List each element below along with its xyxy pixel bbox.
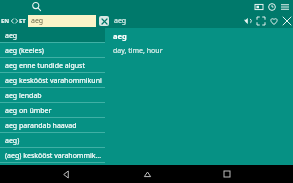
staticText: (aeg) keskööst varahommikuni bbox=[5, 151, 103, 161]
staticText: aeg) bbox=[5, 136, 20, 146]
button[interactable]: Search bbox=[28, 0, 44, 13]
staticText: aeg bbox=[114, 16, 127, 26]
staticText: EN bbox=[1, 17, 10, 25]
button[interactable]: Close bbox=[280, 14, 293, 27]
button[interactable]: Favourite bbox=[267, 14, 280, 27]
button[interactable]: aeg keskööst varahommikuni bbox=[0, 73, 105, 88]
button[interactable]: Fullscreen bbox=[254, 14, 267, 27]
button[interactable]: Recents bbox=[212, 165, 242, 183]
staticText: aeg enne tundide algust bbox=[5, 61, 85, 71]
button[interactable]: aeg bbox=[28, 15, 96, 27]
button[interactable]: Pronounce bbox=[241, 14, 254, 27]
staticText: aeg bbox=[5, 31, 18, 41]
staticText: ET bbox=[19, 17, 26, 25]
staticText: aeg (keeles) bbox=[5, 46, 44, 56]
button[interactable]: aeg parandab haavad bbox=[0, 118, 105, 133]
button[interactable]: aeg) bbox=[0, 133, 105, 148]
button[interactable]: aeg lendab bbox=[0, 88, 105, 103]
staticText: aeg keskööst varahommikuni bbox=[5, 76, 102, 86]
button[interactable]: aeg (keeles) bbox=[0, 43, 105, 58]
button[interactable]: aeg enne tundide algust bbox=[0, 58, 105, 73]
button[interactable]: Flashcards bbox=[252, 0, 265, 13]
staticText: aeg bbox=[31, 16, 44, 26]
staticText: aeg lendab bbox=[5, 91, 42, 101]
button[interactable]: History bbox=[265, 0, 278, 13]
button[interactable]: Clear bbox=[99, 16, 109, 26]
button[interactable]: aeg on ümber bbox=[0, 103, 105, 118]
button[interactable]: Home bbox=[132, 165, 162, 183]
button[interactable]: Back bbox=[51, 165, 81, 183]
staticText: day, time, hour bbox=[113, 46, 163, 56]
button[interactable]: Menu bbox=[278, 0, 291, 13]
button[interactable]: (aeg) keskööst varahommikuni bbox=[0, 148, 105, 163]
button[interactable]: aeg bbox=[0, 28, 105, 43]
staticText: aeg parandab haavad bbox=[5, 121, 77, 131]
staticText: aeg bbox=[113, 31, 127, 41]
button[interactable]: EN bbox=[1, 17, 26, 25]
staticText: aeg on ümber bbox=[5, 106, 52, 116]
